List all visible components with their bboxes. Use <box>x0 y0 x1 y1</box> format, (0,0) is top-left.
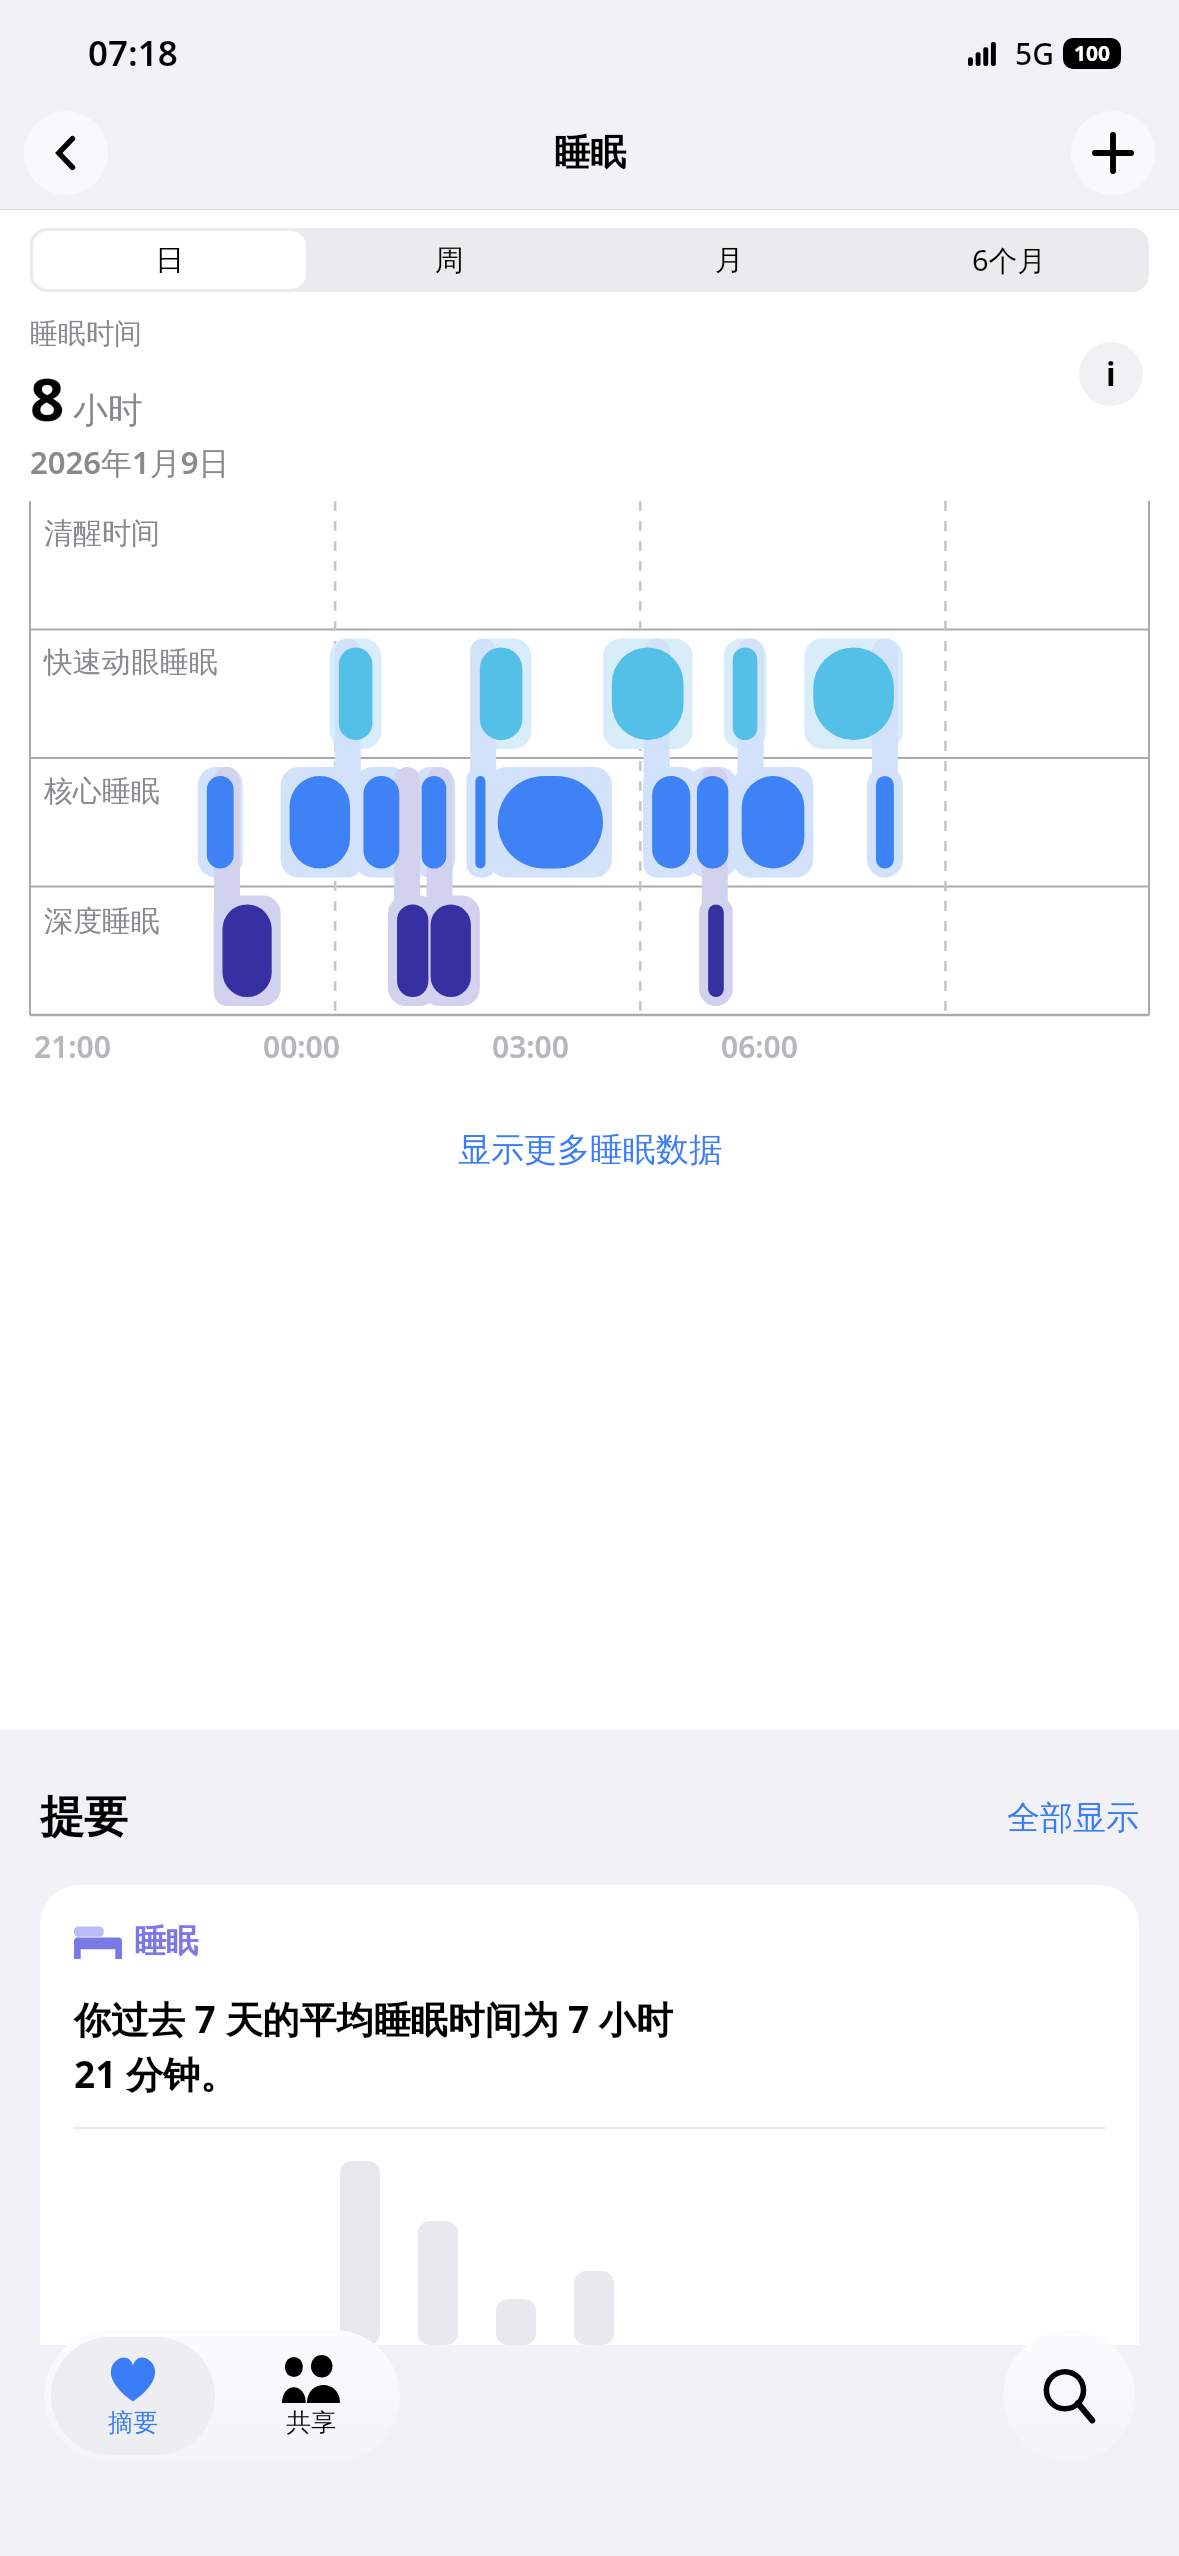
staticText: 5G <box>1015 33 1054 74</box>
staticText: 共享 <box>286 2407 336 2438</box>
staticText: 你过去 7 天的平均睡眠时间为 7 小时 21 分钟。 <box>74 1993 673 2099</box>
staticText: 2026年1月9日 <box>30 441 230 483</box>
staticText: 睡眠时间 <box>30 316 142 351</box>
button[interactable]: 月 <box>592 231 866 289</box>
staticText: 摘要 <box>108 2407 158 2438</box>
staticText: 07:18 <box>88 29 178 77</box>
staticText: 月 <box>715 242 744 279</box>
staticText: 清醒时间 <box>44 515 160 552</box>
staticText: 03:00 <box>492 1026 569 1067</box>
button[interactable]: 日 <box>33 231 306 289</box>
button[interactable]: 全部显示 <box>1007 1797 1139 1839</box>
button[interactable]: 6个月 <box>872 231 1146 289</box>
staticText: 深度睡眠 <box>44 903 160 940</box>
button[interactable]: Add <box>1071 111 1155 195</box>
staticText: 8 <box>30 357 65 439</box>
staticText: 显示更多睡眠数据 <box>458 1129 722 1171</box>
button[interactable]: 显示更多睡眠数据 <box>0 1129 1179 1171</box>
staticText: 日 <box>155 242 184 279</box>
staticText: 全部显示 <box>1007 1797 1139 1839</box>
staticText: 00:00 <box>263 1026 340 1067</box>
staticText: 睡眠 <box>134 1921 198 1961</box>
button[interactable]: 共享 <box>222 2330 400 2462</box>
staticText: i <box>1106 352 1116 396</box>
button[interactable]: 睡眠 <box>40 1885 1139 2345</box>
button[interactable]: Search <box>1003 2330 1135 2462</box>
button[interactable]: 周 <box>312 231 586 289</box>
button[interactable]: 摘要 <box>51 2337 215 2455</box>
staticText: 21:00 <box>34 1026 111 1067</box>
staticText: 周 <box>435 242 464 279</box>
staticText: 6个月 <box>972 240 1047 280</box>
staticText: 100 <box>1074 39 1111 68</box>
button[interactable]: Info <box>1079 342 1143 406</box>
staticText: 睡眠 <box>554 130 626 175</box>
staticText: 06:00 <box>721 1026 798 1067</box>
staticText: 快速动眼睡眠 <box>44 644 218 681</box>
button[interactable]: Back <box>24 111 108 195</box>
staticText: 核心睡眠 <box>44 773 160 810</box>
staticText: 小时 <box>73 388 143 432</box>
staticText: 提要 <box>40 1790 128 1845</box>
